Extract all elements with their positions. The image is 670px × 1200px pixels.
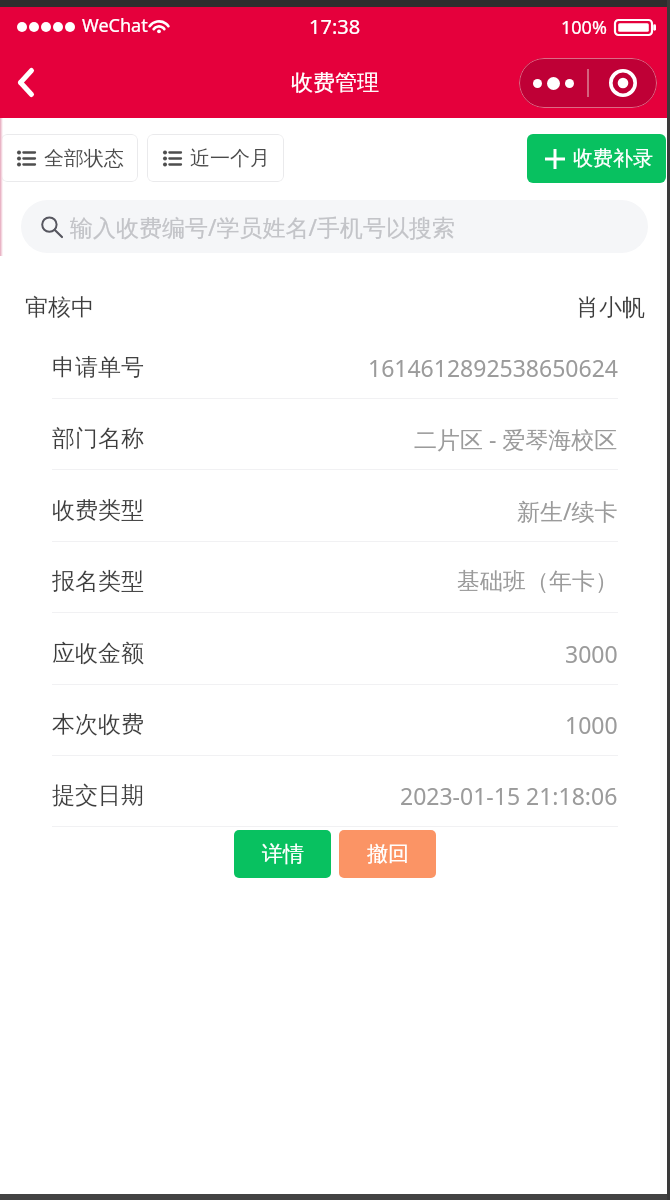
staticText: 报名类型 [52, 567, 144, 596]
button[interactable]: 收费补录 [527, 134, 666, 183]
staticText: 收费管理 [291, 69, 379, 97]
staticText: 17:38 [309, 13, 361, 40]
button[interactable]: 近一个月 [147, 134, 284, 182]
staticText: 收费补录 [573, 146, 653, 171]
staticText: 1000 [565, 709, 618, 740]
staticText: 本次收费 [52, 710, 144, 739]
staticText: 肖小帆 [576, 293, 645, 322]
staticText: 2023-01-15 21:18:06 [400, 780, 618, 811]
staticText: 新生/续卡 [517, 495, 618, 526]
staticText: 近一个月 [190, 146, 270, 171]
staticText: 输入收费编号/学员姓名/手机号以搜索 [70, 211, 456, 242]
staticText: 二片区 - 爱琴海校区 [414, 423, 618, 454]
button[interactable]: Close mini program [589, 58, 657, 108]
button[interactable]: 输入收费编号/学员姓名/手机号以搜索 [21, 200, 648, 253]
staticText: 基础班（年卡） [457, 567, 618, 596]
button[interactable]: 撤回 [339, 830, 436, 878]
staticText: 审核中 [25, 293, 94, 322]
staticText: 1614612892538650624 [368, 352, 618, 383]
staticText: 提交日期 [52, 781, 144, 810]
staticText: 全部状态 [44, 146, 124, 171]
staticText: 部门名称 [52, 424, 144, 453]
button[interactable]: 详情 [234, 830, 331, 878]
staticText: WeChat [82, 13, 148, 38]
staticText: 详情 [262, 841, 304, 867]
button[interactable]: 全部状态 [1, 134, 138, 182]
staticText: 应收金额 [52, 639, 144, 668]
button[interactable]: More options [519, 58, 587, 108]
staticText: 收费类型 [52, 496, 144, 525]
staticText: 3000 [565, 638, 618, 669]
staticText: 申请单号 [52, 353, 144, 382]
staticText: 撤回 [367, 841, 409, 867]
button[interactable]: Back [0, 47, 52, 118]
staticText: 100% [561, 15, 607, 40]
